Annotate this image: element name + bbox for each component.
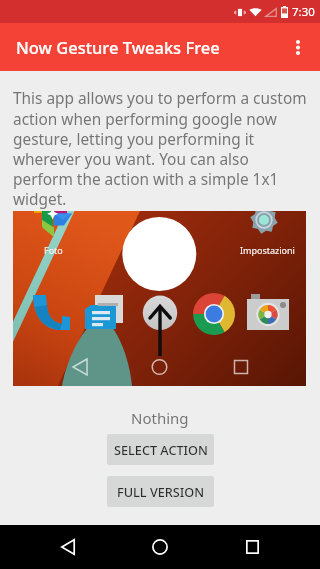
staticText: Foto [44, 244, 63, 256]
staticText: Impostazioni [240, 244, 295, 256]
staticText: Now Gesture Tweaks Free [16, 36, 220, 58]
button[interactable]: Example screenshot [13, 211, 306, 386]
staticText: 7:30 [292, 4, 315, 20]
staticText: FULL VERSION [117, 483, 205, 500]
staticText: SELECT ACTION [114, 441, 208, 458]
button[interactable]: SELECT ACTION [107, 434, 214, 465]
button[interactable]: FULL VERSION [107, 476, 214, 507]
button[interactable]: Recents [228, 525, 276, 569]
staticText: Nothing [131, 408, 189, 428]
staticText: This app allows you to perform a custom … [13, 88, 310, 209]
button[interactable]: More options [276, 25, 320, 69]
button[interactable]: Home [136, 525, 184, 569]
button[interactable]: Back [44, 525, 92, 569]
